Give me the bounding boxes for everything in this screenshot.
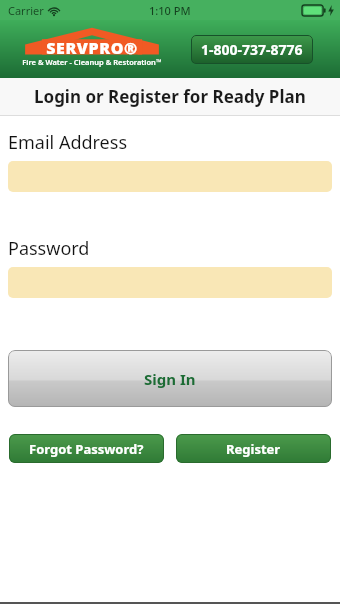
staticText: Carrier <box>8 3 44 18</box>
button[interactable]: Register <box>176 434 331 463</box>
staticText: Login or Register for Ready Plan <box>34 85 306 108</box>
staticText: Email Address <box>8 130 128 155</box>
staticText: Register <box>226 440 281 458</box>
staticText: Sign In <box>144 369 196 389</box>
button[interactable] <box>8 161 332 192</box>
staticText: SERVPRO® <box>16 37 168 59</box>
button[interactable]: Forgot Password? <box>9 434 164 463</box>
staticText: 1:10 PM <box>149 3 191 18</box>
staticText: Fire & Water - Cleanup & Restoration™ <box>16 57 168 67</box>
staticText: Forgot Password? <box>29 440 144 458</box>
button[interactable]: Sign In <box>8 350 332 407</box>
button[interactable]: SERVPRO® <box>16 26 168 72</box>
button[interactable]: 1-800-737-8776 <box>191 35 313 64</box>
button[interactable] <box>8 267 332 298</box>
staticText: Password <box>8 236 90 261</box>
staticText: 1-800-737-8776 <box>201 40 303 59</box>
